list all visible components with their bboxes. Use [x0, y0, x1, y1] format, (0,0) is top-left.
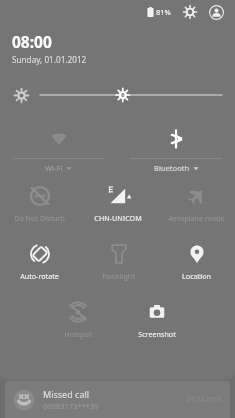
- button[interactable]: Aeroplane mode: [168, 180, 225, 225]
- button[interactable]: Settings: [180, 2, 200, 22]
- button[interactable]: Bluetooth: [117, 120, 235, 177]
- staticText: Screenshot: [138, 329, 176, 339]
- staticText: Bluetooth: [154, 163, 190, 173]
- button[interactable]: Location: [182, 238, 211, 283]
- staticText: 00989173***39: [43, 401, 99, 411]
- button[interactable]: Missed call: [5, 381, 230, 418]
- button[interactable]: Do Not Disturb: [14, 180, 65, 225]
- staticText: Hotspot: [64, 329, 92, 339]
- staticText: Location: [182, 271, 211, 281]
- staticText: Sunday, 01.01.2012: [12, 54, 87, 65]
- button[interactable]: Wi-Fi: [0, 120, 117, 177]
- staticText: CHN-UNICOM: [94, 213, 142, 223]
- staticText: Wi-Fi: [45, 163, 63, 173]
- staticText: Aeroplane mode: [168, 213, 225, 223]
- button[interactable]: User profile: [206, 2, 226, 22]
- button[interactable]: Flashlight: [102, 238, 135, 283]
- button[interactable]: Hotspot: [64, 296, 92, 341]
- staticText: 08:00: [12, 31, 52, 52]
- staticText: 07.04.2016: [187, 395, 221, 404]
- staticText: Do Not Disturb: [14, 213, 65, 223]
- button[interactable]: Screenshot: [138, 296, 176, 341]
- button[interactable]: Auto-rotate: [20, 238, 59, 283]
- button[interactable]: CHN-UNICOM: [94, 180, 142, 225]
- button[interactable]: Brightness: [40, 86, 222, 104]
- staticText: Flashlight: [102, 271, 135, 281]
- staticText: 81%: [156, 7, 171, 17]
- staticText: Auto-rotate: [20, 271, 59, 281]
- staticText: Missed call: [43, 388, 90, 400]
